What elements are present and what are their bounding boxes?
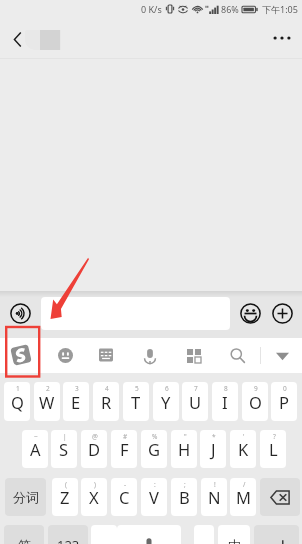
button[interactable]: Voice input [133, 338, 167, 373]
staticText: ' [243, 432, 245, 441]
staticText: 0 [283, 384, 287, 393]
button[interactable]: - [111, 478, 137, 516]
staticText: P [279, 391, 289, 413]
button[interactable]: ~ [22, 430, 48, 468]
staticText: / [243, 480, 246, 489]
button[interactable]: 5 [123, 382, 149, 421]
staticText: L [269, 438, 278, 460]
button[interactable]: Emoji [48, 338, 82, 373]
button[interactable]: # [111, 430, 137, 468]
button[interactable]: 0 [271, 382, 297, 421]
staticText: B [179, 486, 190, 508]
button[interactable]: / [230, 478, 256, 516]
button[interactable] [117, 525, 181, 544]
button[interactable]: 123 [48, 525, 88, 544]
button[interactable]: 4 [93, 382, 119, 421]
staticText: ! [214, 480, 216, 489]
staticText: ? [273, 432, 276, 441]
button[interactable]: Keyboard layout [89, 338, 123, 373]
button[interactable]: 9 [242, 382, 268, 421]
button[interactable]: : [141, 478, 167, 516]
button[interactable] [260, 478, 300, 516]
staticText: ; [184, 480, 186, 489]
staticText: 2 [46, 384, 50, 393]
staticText: | [63, 432, 67, 441]
staticText: A [30, 438, 41, 460]
button[interactable]: Voice input [10, 303, 31, 324]
staticText: * [212, 432, 216, 441]
button[interactable]: 2 [34, 382, 60, 421]
button[interactable]: 6 [153, 382, 179, 421]
button[interactable]: Sogou input [4, 338, 38, 373]
staticText: ) [94, 480, 96, 489]
staticText: 0 K/s [141, 3, 162, 15]
staticText: M [236, 486, 251, 508]
button[interactable]: ; [171, 478, 197, 516]
staticText: R [101, 391, 112, 413]
staticText: H [178, 438, 191, 460]
button[interactable]: 中 [218, 525, 250, 544]
button[interactable]: 8 [212, 382, 238, 421]
staticText: W [39, 391, 55, 413]
staticText: 5 [135, 384, 139, 393]
staticText: T [131, 391, 141, 413]
button[interactable]: 3 [63, 382, 89, 421]
staticText: J [211, 438, 216, 460]
staticText: E [71, 391, 81, 413]
staticText: 分词 [13, 489, 39, 505]
staticText: C [119, 486, 130, 508]
staticText: 中 [228, 537, 241, 544]
button[interactable]: * [200, 430, 226, 468]
button[interactable]: ! [201, 478, 227, 516]
staticText: # [123, 432, 128, 441]
button[interactable]: " [171, 430, 197, 468]
button[interactable] [41, 297, 230, 330]
staticText: 3 [75, 384, 79, 393]
button[interactable]: ) [81, 478, 107, 516]
button[interactable]: 1 [4, 382, 30, 421]
button[interactable]: 7 [182, 382, 208, 421]
staticText: K [238, 438, 249, 460]
button[interactable]: Back [4, 18, 30, 58]
staticText: 符 [18, 537, 31, 544]
staticText: O [249, 391, 262, 413]
button[interactable] [254, 525, 299, 544]
staticText: : [154, 480, 156, 489]
staticText: Q [11, 391, 24, 413]
button[interactable]: Emoji [240, 303, 261, 324]
staticText: F [120, 438, 129, 460]
button[interactable]: ? [260, 430, 286, 468]
staticText: 123 [57, 536, 80, 544]
staticText: 1 [16, 384, 20, 393]
staticText: V [149, 486, 159, 508]
staticText: S [59, 438, 69, 460]
button[interactable]: @ [81, 430, 107, 468]
button[interactable]: Add [272, 303, 293, 324]
button[interactable]: Search [220, 338, 254, 373]
staticText: ( [65, 480, 67, 489]
staticText: - [124, 480, 127, 489]
staticText: X [89, 486, 99, 508]
staticText: N [208, 486, 221, 508]
button[interactable]: ' [230, 430, 256, 468]
button[interactable]: % [141, 430, 167, 468]
button[interactable]: | [51, 430, 77, 468]
staticText: ~ [34, 432, 38, 441]
button[interactable]: More apps [177, 338, 211, 373]
staticText: D [88, 438, 101, 460]
staticText: 86% [221, 3, 239, 15]
staticText: 8 [224, 384, 228, 393]
staticText: Z [60, 486, 70, 508]
button[interactable]: Hide keyboard [265, 338, 299, 373]
staticText: 9 [254, 384, 258, 393]
button[interactable]: 符 [4, 525, 44, 544]
button[interactable]: ( [52, 478, 78, 516]
button[interactable]: More options [266, 18, 298, 58]
staticText: % [152, 432, 158, 441]
staticText: Y [161, 391, 171, 413]
button[interactable]: 分词 [5, 478, 46, 516]
